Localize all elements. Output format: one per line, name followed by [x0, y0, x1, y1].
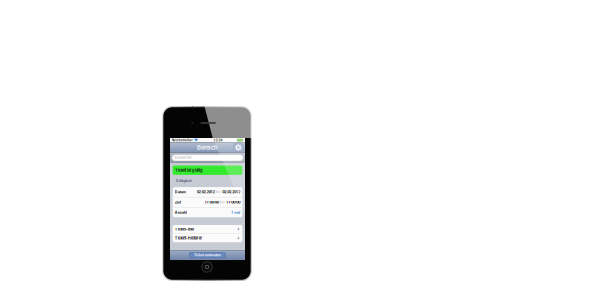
- button[interactable]: Ticket-Info: [173, 225, 242, 233]
- staticText: 02.02.2012: [197, 190, 215, 194]
- staticText: 1 mal: [231, 210, 240, 215]
- staticText: bis: [216, 190, 221, 194]
- button[interactable]: Ticket entwerten: [189, 252, 225, 258]
- staticText: Ticket-Historie: [175, 236, 202, 240]
- staticText: 11:00:00: [226, 200, 240, 204]
- staticText: Ticket-Info: [175, 227, 194, 232]
- staticText: Datum: [175, 190, 186, 194]
- staticText: Anzahl: [175, 210, 187, 215]
- button[interactable]: Einstellungen: [233, 144, 243, 151]
- staticText: Ticket ist gültig: [175, 168, 203, 173]
- button[interactable]: Ticketnummer: [172, 155, 243, 161]
- staticText: Gültigkeit: [176, 179, 192, 183]
- staticText: Bereich: [197, 144, 218, 151]
- staticText: Ticket entwerten: [194, 253, 221, 257]
- button[interactable]: Ticket-Historie: [173, 234, 242, 242]
- staticText: 11:00:00: [205, 200, 219, 204]
- staticText: Zeit: [175, 200, 181, 204]
- staticText: 123456789: [174, 156, 191, 160]
- staticText: Netzbetreiber: [172, 138, 193, 142]
- staticText: bis: [220, 200, 225, 204]
- staticText: 02.02.2012: [222, 190, 240, 194]
- staticText: 13:34: [213, 138, 222, 142]
